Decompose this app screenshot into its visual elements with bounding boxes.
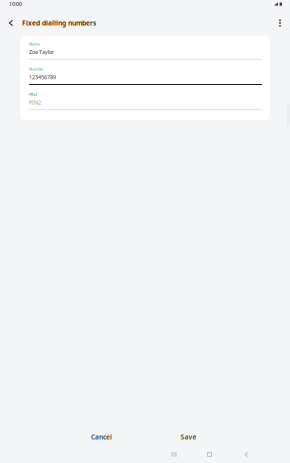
staticText: Save <box>180 433 196 441</box>
staticText: PIN2 <box>29 92 37 97</box>
button[interactable]: Recent apps <box>162 446 186 463</box>
button[interactable]: Name <box>29 41 262 60</box>
button[interactable]: Save <box>145 428 232 446</box>
button[interactable]: Back <box>234 446 258 463</box>
staticText: 10:00 <box>9 0 22 8</box>
staticText: Fixed dialling numbers <box>22 19 96 27</box>
button[interactable]: Back <box>4 10 18 36</box>
staticText: Zoe Taylor <box>29 48 54 55</box>
staticText: Cancel <box>91 433 112 441</box>
button[interactable]: Cancel <box>58 428 145 446</box>
button[interactable]: PIN2 <box>29 92 262 110</box>
button[interactable]: More options <box>272 10 288 36</box>
button[interactable]: Home <box>197 446 221 463</box>
staticText: Name <box>29 41 40 46</box>
staticText: PIN2 <box>29 99 41 106</box>
button[interactable]: Number <box>29 67 262 85</box>
staticText: Number <box>29 66 44 72</box>
staticText: 123456789 <box>29 73 56 81</box>
